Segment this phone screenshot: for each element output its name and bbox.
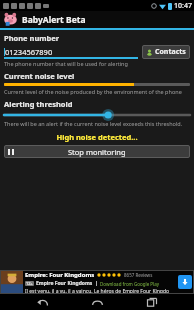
staticText: Phone number <box>4 33 60 43</box>
button[interactable]: Back <box>29 294 55 310</box>
other: Pause <box>8 149 14 155</box>
staticText: BabyAlert Beta <box>22 14 86 26</box>
button[interactable] <box>4 110 190 120</box>
button[interactable]: Recent apps <box>139 294 165 310</box>
staticText: Current level of the noise produced by t… <box>4 88 182 95</box>
staticText: Alerting threshold <box>4 99 73 109</box>
staticText: 8657 Reviews <box>124 272 153 278</box>
button[interactable]: Stop monitoring <box>4 145 190 158</box>
staticText: 10:47 <box>174 1 192 11</box>
button[interactable]: Home <box>84 294 110 310</box>
staticText: The phone number that will be used for a… <box>4 60 128 67</box>
staticText: Empire Four Kingdoms | <box>36 280 98 287</box>
button[interactable]: Download <box>178 275 192 289</box>
button[interactable]: Contacts <box>142 45 190 59</box>
staticText: High noise detected... <box>56 132 138 142</box>
staticText: Contacts <box>155 47 186 57</box>
staticText: Il est venu, il a vu, il a vaincu. Le hé… <box>25 288 170 293</box>
staticText: Stop monitoring <box>68 147 126 157</box>
staticText: Empire: Four Kingdoms <box>25 271 95 279</box>
staticText: 12+ <box>26 281 33 286</box>
staticText: 01234567890 <box>5 47 53 57</box>
staticText: Current noise level <box>4 71 75 81</box>
staticText: Download from Google Play <box>100 281 160 287</box>
button[interactable]: Empire: Four Kingdoms <box>0 270 194 294</box>
staticText: There will be an alert if the current no… <box>4 120 183 127</box>
